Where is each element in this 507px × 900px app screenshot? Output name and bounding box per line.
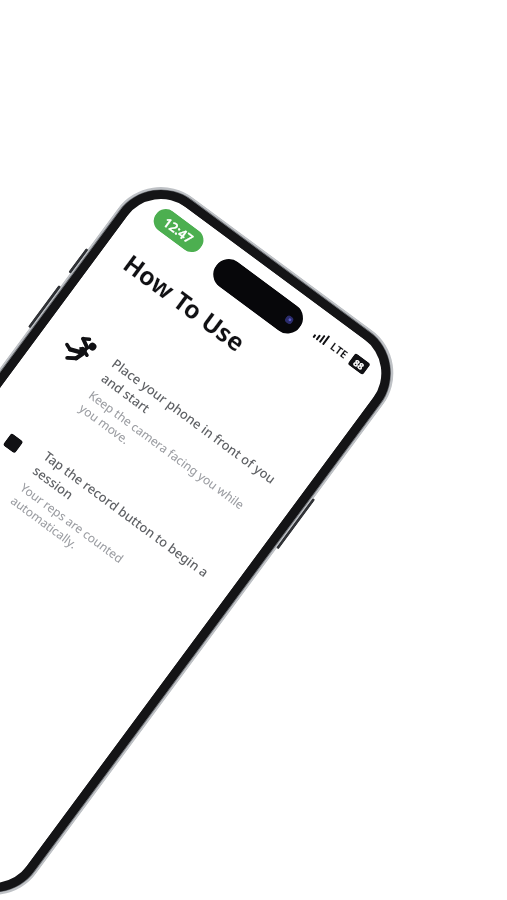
staticText: Keep the camera facing you while you mov…	[76, 387, 259, 535]
staticText: 88	[351, 356, 367, 372]
staticText: Place your phone in front of you and sta…	[98, 354, 283, 505]
staticText: Tap the record button to begin a session	[29, 447, 215, 597]
staticText: Your reps are counted automatically.	[7, 479, 191, 627]
staticText: 12:47	[160, 213, 198, 248]
other: Record	[0, 419, 37, 466]
button[interactable]: Record	[0, 397, 239, 647]
other: Running	[58, 326, 105, 374]
button[interactable]: Running	[11, 304, 308, 555]
staticText: How To Use	[117, 246, 362, 440]
staticText: LTE	[327, 338, 352, 362]
